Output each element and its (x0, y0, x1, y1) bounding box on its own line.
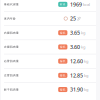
staticText: 偏低 (60, 45, 66, 49)
button[interactable]: 右腿肌肉量 (1, 26, 96, 40)
button[interactable]: 基础代谢量 (1, 0, 96, 11)
staticText: 3.65 (70, 29, 80, 36)
staticText: 1969 (70, 1, 82, 8)
staticText: 体内年龄 (4, 17, 16, 20)
staticText: 12.85 (70, 72, 83, 79)
staticText: 右腿肌肉量 (4, 31, 19, 34)
staticText: 3.60 (70, 43, 80, 50)
staticText: 25 (70, 15, 76, 22)
button[interactable]: 左腿肌肉量 (1, 40, 96, 54)
staticText: 偏低 (60, 59, 66, 63)
staticText: 偏低 (60, 31, 66, 34)
staticText: 躯干肌肉量 (4, 88, 19, 91)
button[interactable]: 躯干肌肉量 (1, 83, 96, 96)
staticText: 岁 (77, 16, 81, 21)
staticText: kg (81, 44, 85, 50)
staticText: kg (81, 30, 85, 35)
staticText: 左腿肌肉量 (4, 45, 19, 49)
button[interactable]: 右臂肌肉量 (1, 54, 96, 68)
staticText: 偏低 (60, 88, 66, 91)
staticText: kg (84, 87, 88, 92)
button[interactable]: 体内年龄 (1, 12, 96, 25)
staticText: 12.60 (70, 58, 83, 65)
staticText: 右臂肌肉量 (4, 59, 19, 63)
button[interactable]: 左臂肌肉量 (1, 68, 96, 82)
staticText: 基础代谢量 (4, 3, 19, 6)
staticText: 左臂肌肉量 (4, 74, 19, 77)
staticText: 偏低 (60, 74, 66, 77)
staticText: 标准 (60, 3, 66, 6)
staticText: 31.90 (70, 86, 83, 93)
staticText: kcal (83, 2, 90, 7)
staticText: kg (84, 73, 88, 78)
staticText: kg (84, 58, 88, 64)
